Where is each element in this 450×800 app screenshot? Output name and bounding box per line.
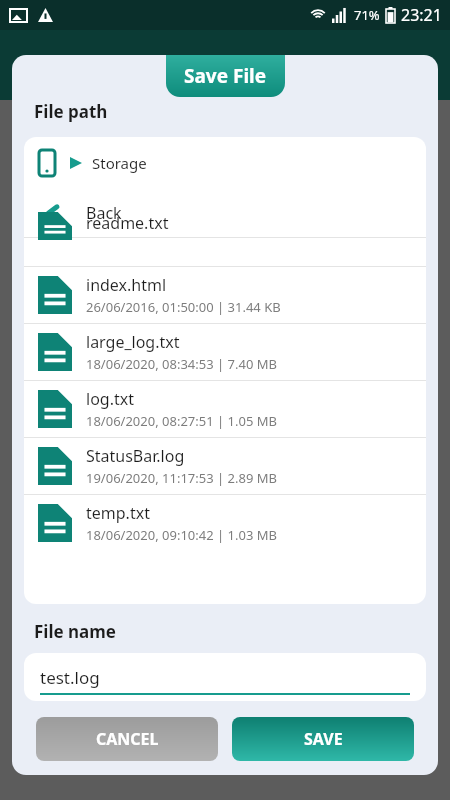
button[interactable]: log.txt (24, 381, 426, 437)
button[interactable]: Back (24, 189, 426, 237)
staticText: StatusBar.log (86, 445, 185, 467)
button[interactable]: readme.txt (24, 238, 426, 266)
staticText: 71% (354, 6, 380, 24)
staticText: log.txt (86, 388, 134, 410)
staticText: 18/06/2020, 08:27:51 | 1.05 MB (86, 412, 277, 430)
button[interactable]: SAVE (232, 717, 414, 761)
button[interactable]: Storage (24, 137, 426, 189)
staticText: CANCEL (96, 728, 159, 750)
staticText: temp.txt (86, 502, 150, 524)
staticText: test.log (40, 666, 100, 689)
staticText: File name (34, 620, 117, 643)
staticText: SAVE (304, 728, 343, 750)
staticText: index.html (86, 274, 167, 296)
button[interactable]: temp.txt (24, 495, 426, 551)
staticText: 23:21 (401, 4, 442, 26)
staticText: Back (86, 202, 122, 224)
button[interactable]: Save File (166, 55, 285, 97)
button[interactable]: StatusBar.log (24, 438, 426, 494)
staticText: File path (34, 100, 108, 123)
button[interactable]: large_log.txt (24, 324, 426, 380)
button[interactable]: CANCEL (36, 717, 218, 761)
staticText: 18/06/2020, 08:34:53 | 7.40 MB (86, 355, 277, 373)
button[interactable]: test.log (24, 653, 426, 701)
staticText: large_log.txt (86, 331, 180, 353)
button[interactable]: index.html (24, 267, 426, 323)
staticText: Storage (92, 153, 147, 173)
staticText: 10/09/2016, 09:30:49 | 741 B (86, 236, 262, 240)
staticText: 19/06/2020, 11:17:53 | 2.89 MB (86, 469, 277, 487)
staticText: Save File (184, 63, 267, 89)
staticText: readme.txt (86, 212, 169, 234)
staticText: 18/06/2020, 09:10:42 | 1.03 MB (86, 526, 277, 544)
staticText: 26/06/2016, 01:50:00 | 31.44 KB (86, 298, 281, 316)
